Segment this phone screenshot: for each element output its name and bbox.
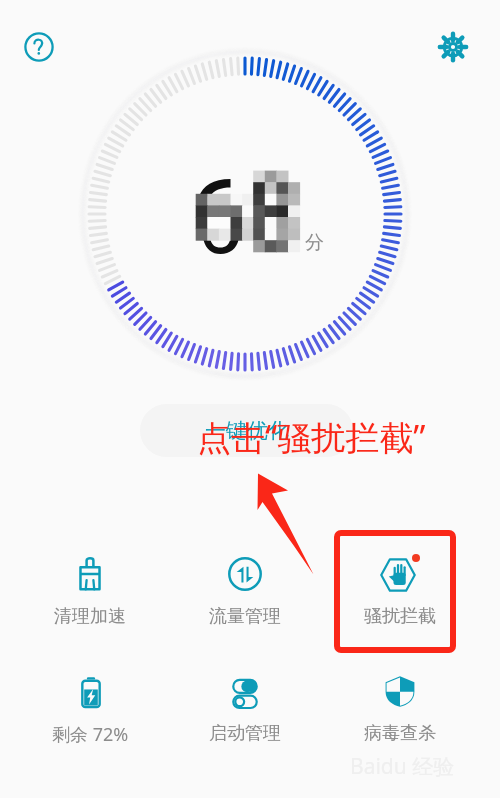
staticText: Baidu 经验 bbox=[350, 752, 455, 781]
staticText: 清理加速 bbox=[54, 605, 126, 628]
staticText: 分 bbox=[305, 231, 324, 255]
button[interactable]: Startup management bbox=[187, 669, 303, 753]
staticText: 点击“骚扰拦截” bbox=[197, 414, 426, 460]
button[interactable]: Data management bbox=[187, 552, 303, 636]
staticText: 病毒查杀 bbox=[364, 722, 436, 745]
button[interactable]: Virus scan bbox=[342, 669, 458, 753]
button[interactable]: Help bbox=[22, 30, 56, 64]
staticText: 一键优化 bbox=[205, 418, 289, 444]
button[interactable]: 一键优化 bbox=[140, 404, 353, 457]
staticText: 流量管理 bbox=[209, 605, 281, 628]
staticText: 剩余 72% bbox=[52, 722, 129, 747]
staticText: 骚扰拦截 bbox=[364, 605, 436, 628]
staticText: 启动管理 bbox=[209, 722, 281, 745]
button[interactable]: Clean and speed up bbox=[32, 552, 148, 636]
button[interactable]: Battery remaining 72% bbox=[32, 669, 148, 753]
button[interactable]: Settings bbox=[436, 30, 470, 64]
button[interactable]: Harassment blocking bbox=[342, 552, 458, 636]
